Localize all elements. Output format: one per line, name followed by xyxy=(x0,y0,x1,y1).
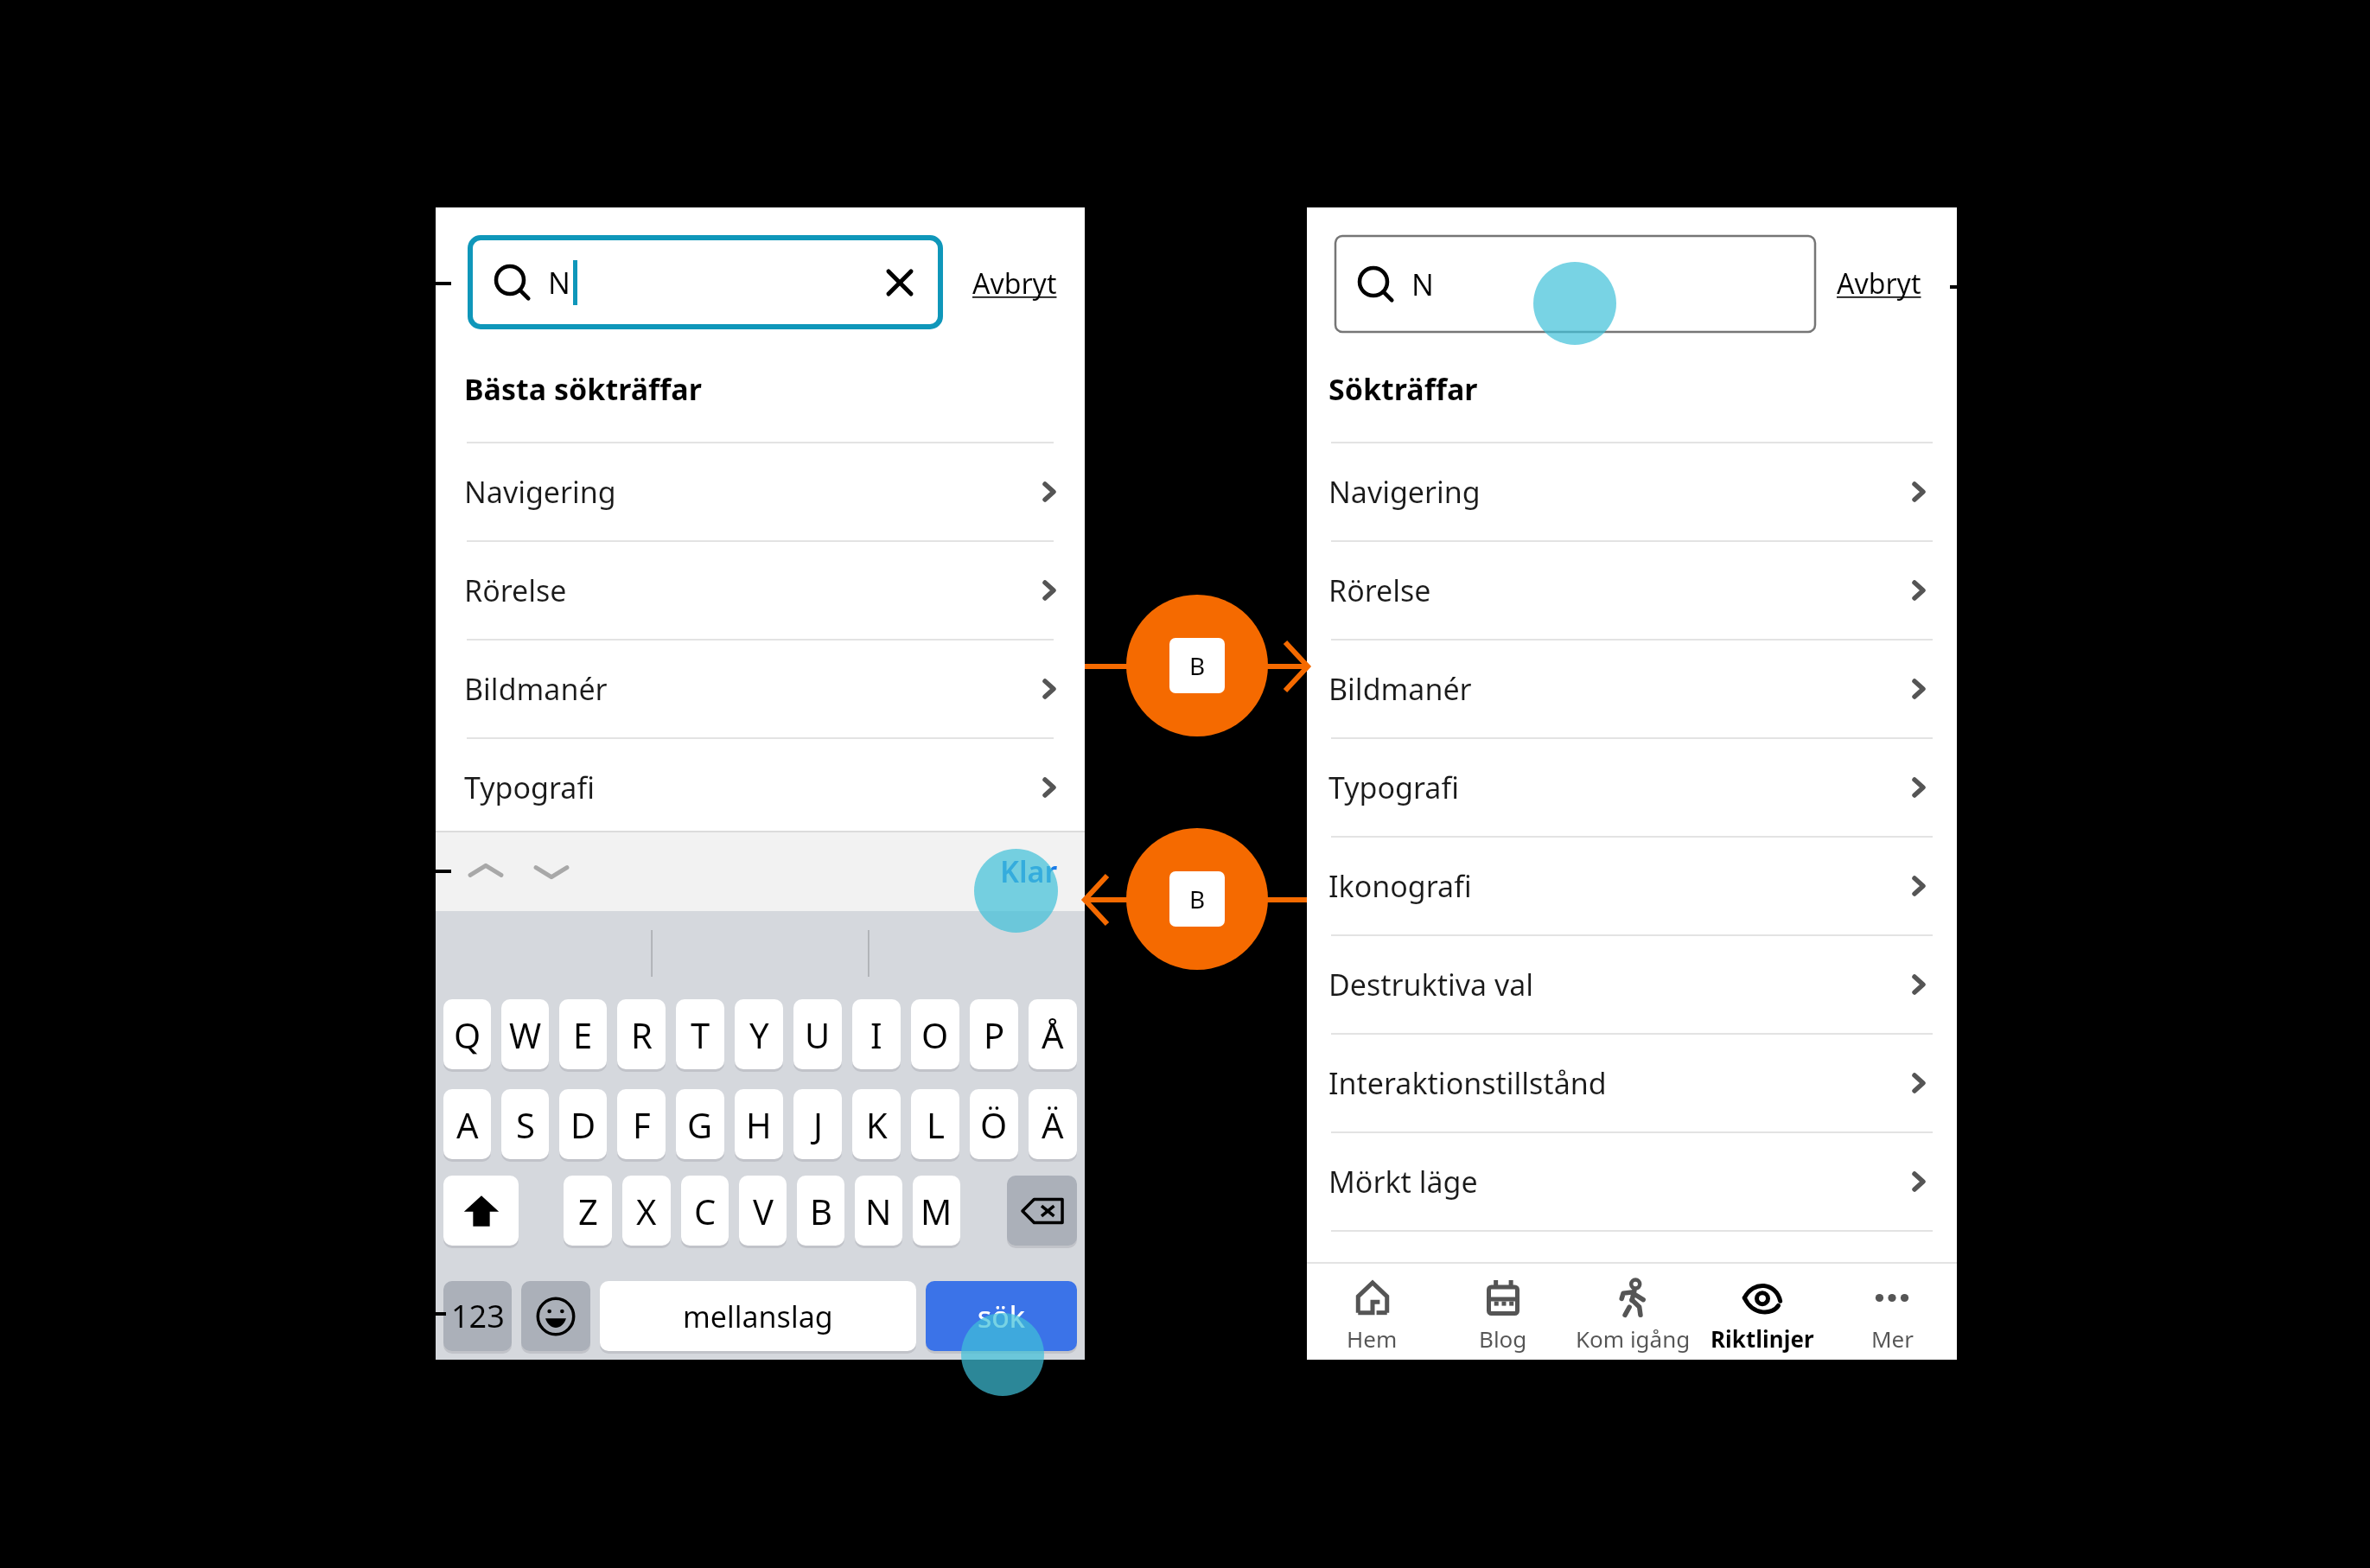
button[interactable]: Rörelse xyxy=(436,542,1085,639)
button[interactable]: Ikonografi xyxy=(1307,838,1957,934)
button[interactable]: Mer xyxy=(1827,1264,1957,1360)
button[interactable]: Å xyxy=(1029,999,1077,1069)
staticText: B xyxy=(1189,649,1206,682)
staticText: Destruktiva val xyxy=(1328,965,1534,1004)
staticText: K xyxy=(866,1101,888,1148)
button[interactable]: Klar xyxy=(1000,851,1058,891)
button[interactable]: E xyxy=(559,999,607,1069)
button[interactable]: Z xyxy=(564,1176,612,1246)
staticText: N xyxy=(548,263,570,303)
button[interactable]: T xyxy=(676,999,724,1069)
button[interactable]: Ä xyxy=(1029,1089,1077,1159)
button[interactable]: X xyxy=(622,1176,671,1246)
button[interactable]: Avbryt xyxy=(1837,265,1921,303)
button[interactable]: Q xyxy=(443,999,491,1069)
button[interactable]: Typografi xyxy=(436,739,1085,836)
staticText: Blog xyxy=(1479,1323,1527,1354)
staticText: G xyxy=(687,1101,713,1148)
button[interactable]: U xyxy=(793,999,842,1069)
staticText: M xyxy=(921,1188,952,1234)
button[interactable]: Blog xyxy=(1437,1264,1568,1360)
staticText: Å xyxy=(1042,1011,1064,1058)
staticText: Ä xyxy=(1042,1101,1064,1148)
button[interactable]: I xyxy=(852,999,901,1069)
staticText: N xyxy=(1411,265,1434,304)
button[interactable]: M xyxy=(913,1176,960,1246)
button[interactable]: Emoji xyxy=(521,1281,590,1351)
staticText: V xyxy=(753,1188,774,1234)
button[interactable]: C xyxy=(681,1176,729,1246)
button[interactable]: Bildmanér xyxy=(1307,641,1957,737)
button[interactable]: G xyxy=(676,1089,724,1159)
staticText: A xyxy=(456,1101,479,1148)
button[interactable]: Föregående fält xyxy=(462,847,510,896)
staticText: Hem xyxy=(1347,1323,1398,1354)
button[interactable]: N xyxy=(470,238,940,327)
button[interactable]: K xyxy=(852,1089,901,1159)
button[interactable]: Y xyxy=(735,999,783,1069)
button[interactable]: Siffror xyxy=(443,1281,512,1351)
staticText: S xyxy=(516,1101,535,1148)
staticText: B xyxy=(810,1188,832,1234)
button[interactable]: A xyxy=(443,1089,491,1159)
button[interactable]: Kom igång xyxy=(1568,1264,1698,1360)
staticText: Rörelse xyxy=(1328,570,1431,610)
staticText: Ikonografi xyxy=(1328,866,1472,906)
staticText: E xyxy=(573,1011,593,1058)
button[interactable]: Avbryt xyxy=(972,265,1057,303)
button[interactable]: S xyxy=(501,1089,549,1159)
button[interactable]: Skift xyxy=(443,1176,519,1246)
staticText: I xyxy=(870,1011,882,1058)
button[interactable]: L xyxy=(911,1089,959,1159)
button[interactable]: B xyxy=(797,1176,844,1246)
staticText: L xyxy=(927,1101,945,1148)
button[interactable]: Bildmanér xyxy=(436,641,1085,737)
button[interactable]: Radera xyxy=(1007,1176,1077,1246)
button[interactable]: N xyxy=(855,1176,902,1246)
button[interactable]: V xyxy=(739,1176,787,1246)
staticText: Q xyxy=(454,1011,481,1058)
button[interactable]: F xyxy=(617,1089,666,1159)
button[interactable]: Hem xyxy=(1307,1264,1437,1360)
button[interactable]: Mellanslag xyxy=(600,1281,916,1351)
button[interactable]: Flödesnod B xyxy=(1126,595,1268,736)
button[interactable]: Mörkt läge xyxy=(1307,1133,1957,1230)
staticText: D xyxy=(570,1101,596,1148)
staticText: Interaktionstillstånd xyxy=(1328,1063,1607,1103)
staticText: Y xyxy=(749,1011,769,1058)
button[interactable]: D xyxy=(559,1089,607,1159)
staticText: sök xyxy=(978,1297,1026,1336)
staticText: Mer xyxy=(1871,1323,1914,1354)
button[interactable]: Navigering xyxy=(1307,443,1957,540)
staticText: C xyxy=(694,1188,717,1234)
button[interactable]: Typografi xyxy=(1307,739,1957,836)
staticText: Ö xyxy=(980,1101,1008,1148)
button[interactable]: P xyxy=(970,999,1018,1069)
button[interactable]: Riktlinjer xyxy=(1698,1264,1827,1360)
staticText: Klar xyxy=(1000,851,1058,891)
button[interactable]: H xyxy=(735,1089,783,1159)
staticText: F xyxy=(633,1101,651,1148)
button[interactable]: Rörelse xyxy=(1307,542,1957,639)
staticText: Riktlinjer xyxy=(1711,1323,1814,1354)
button[interactable]: Interaktionstillstånd xyxy=(1307,1035,1957,1131)
button[interactable]: Flödesnod B xyxy=(1126,828,1268,970)
staticText: B xyxy=(1189,883,1206,915)
button[interactable]: Navigering xyxy=(436,443,1085,540)
staticText: Typografi xyxy=(1328,768,1459,807)
button[interactable]: O xyxy=(911,999,959,1069)
staticText: H xyxy=(746,1101,772,1148)
staticText: Mörkt läge xyxy=(1328,1162,1478,1201)
button[interactable]: Nästa fält xyxy=(527,847,576,896)
button[interactable]: R xyxy=(617,999,666,1069)
staticText: Navigering xyxy=(1328,472,1481,512)
button[interactable]: Sök xyxy=(926,1281,1077,1351)
button[interactable]: Destruktiva val xyxy=(1307,936,1957,1033)
staticText: Avbryt xyxy=(1837,265,1921,303)
button[interactable]: W xyxy=(501,999,549,1069)
button[interactable]: Rensa xyxy=(879,262,921,303)
button[interactable]: J xyxy=(793,1089,842,1159)
button[interactable]: N xyxy=(1335,236,1815,332)
staticText: 123 xyxy=(451,1295,505,1337)
button[interactable]: Ö xyxy=(970,1089,1018,1159)
